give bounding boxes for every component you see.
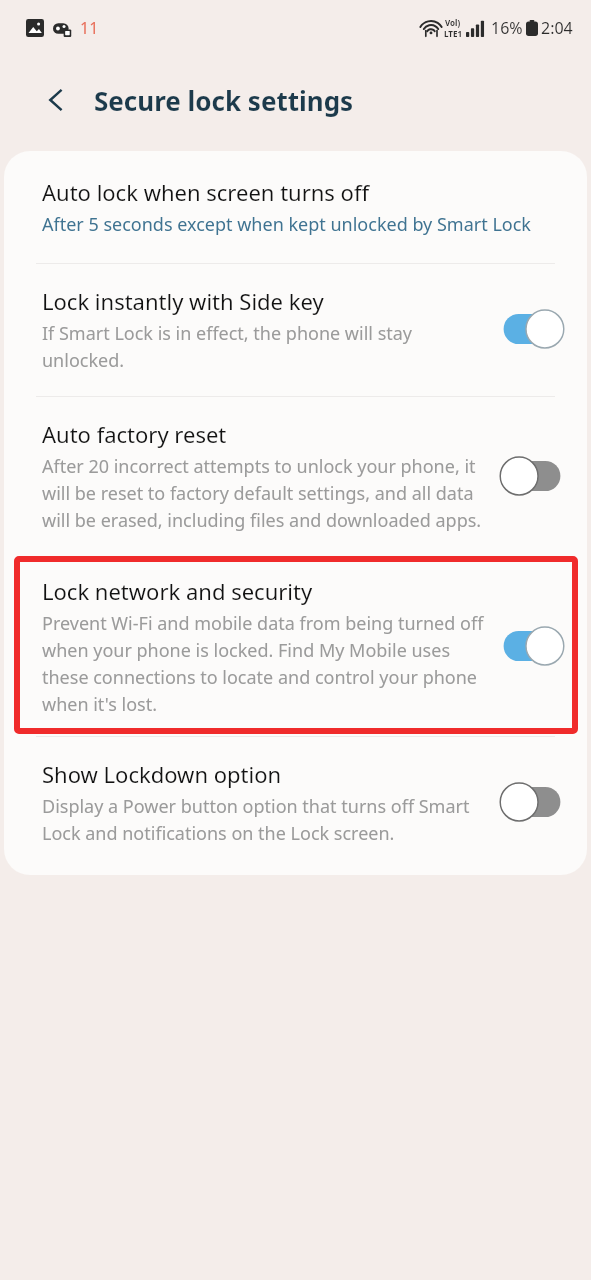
button[interactable]: Toggle on [499, 308, 565, 350]
button[interactable]: Auto factory reset [4, 397, 587, 554]
staticText: Lock instantly with Side key [42, 286, 324, 316]
staticText: After 20 incorrect attempts to unlock yo… [42, 454, 489, 532]
staticText: Auto factory reset [42, 419, 227, 449]
button[interactable]: Lock network and security [4, 554, 587, 736]
staticText: 16% [491, 17, 523, 39]
button[interactable]: Toggle off [499, 455, 565, 497]
staticText: After 5 seconds except when kept unlocke… [42, 212, 565, 237]
staticText: 2:04 [541, 17, 573, 39]
staticText: 11 [80, 17, 99, 39]
staticText: Prevent Wi-Fi and mobile data from being… [42, 611, 489, 716]
button[interactable]: Lock instantly with Side key [4, 264, 587, 396]
button[interactable]: Show Lockdown option [4, 737, 587, 875]
button[interactable]: Toggle off [499, 781, 565, 823]
staticText: Display a Power button option that turns… [42, 794, 489, 845]
button[interactable]: Toggle on [499, 625, 565, 667]
staticText: Vol) [445, 17, 461, 28]
staticText: Show Lockdown option [42, 759, 282, 789]
staticText: Lock network and security [42, 576, 313, 606]
button[interactable]: Back [34, 78, 78, 122]
staticText: Auto lock when screen turns off [42, 177, 370, 207]
staticText: If Smart Lock is in effect, the phone wi… [42, 321, 489, 372]
staticText: LTE1 [444, 28, 462, 39]
staticText: Secure lock settings [94, 83, 354, 118]
button[interactable]: Auto lock when screen turns off [4, 151, 587, 263]
